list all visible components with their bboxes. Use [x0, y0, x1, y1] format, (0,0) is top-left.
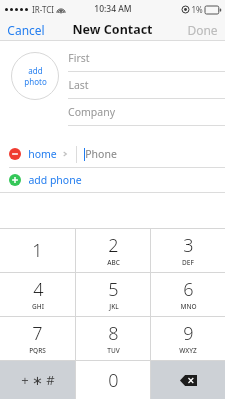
- staticText: ABC: [107, 258, 120, 267]
- staticText: 8: [108, 321, 119, 346]
- staticText: DEF: [182, 258, 194, 267]
- staticText: + ∗ #: [21, 371, 55, 389]
- staticText: 3: [183, 233, 194, 258]
- button[interactable]: 6: [151, 273, 225, 316]
- staticText: 9: [183, 321, 194, 346]
- staticText: 4: [33, 277, 44, 302]
- button[interactable]: Company: [0, 99, 225, 126]
- staticText: New Contact: [72, 21, 153, 38]
- button[interactable]: 4: [0, 273, 75, 316]
- staticText: Company: [68, 105, 115, 119]
- button[interactable]: 3: [151, 229, 225, 272]
- button[interactable]: 8: [76, 317, 150, 360]
- button[interactable]: Done: [180, 18, 225, 41]
- staticText: 5: [108, 277, 119, 302]
- button[interactable]: plus star hash: [0, 361, 75, 399]
- staticText: 7: [32, 321, 43, 346]
- button[interactable]: add photo: [11, 52, 59, 100]
- staticText: add: [28, 65, 43, 76]
- button[interactable]: 0: [76, 361, 150, 399]
- staticText: IR-TCI: [32, 4, 54, 15]
- staticText: home: [28, 147, 57, 161]
- staticText: JKL: [109, 302, 119, 311]
- button[interactable]: Delete: [151, 361, 225, 399]
- staticText: 2: [108, 233, 119, 258]
- staticText: MNO: [180, 302, 197, 311]
- button[interactable]: home: [0, 141, 225, 168]
- staticText: Cancel: [7, 22, 45, 38]
- staticText: First: [68, 51, 90, 65]
- button[interactable]: 7: [0, 317, 75, 360]
- button[interactable]: Last: [0, 72, 225, 99]
- button[interactable]: Cancel: [0, 18, 52, 41]
- staticText: TUV: [107, 346, 120, 355]
- staticText: 1: [32, 238, 43, 263]
- button[interactable]: 1: [0, 229, 75, 272]
- button[interactable]: 9: [151, 317, 225, 360]
- staticText: 6: [183, 277, 194, 302]
- staticText: Phone: [85, 147, 117, 161]
- staticText: 1%: [191, 4, 203, 15]
- staticText: GHI: [32, 302, 44, 311]
- staticText: 0: [108, 368, 119, 393]
- button[interactable]: add phone: [0, 168, 225, 192]
- staticText: Done: [187, 22, 218, 38]
- button[interactable]: 5: [76, 273, 150, 316]
- staticText: WXYZ: [179, 346, 197, 355]
- button[interactable]: 2: [76, 229, 150, 272]
- button[interactable]: First: [0, 45, 225, 72]
- staticText: photo: [24, 76, 47, 87]
- staticText: add phone: [28, 173, 82, 187]
- staticText: 10:34 AM: [94, 3, 132, 15]
- staticText: PQRS: [29, 346, 46, 355]
- staticText: Last: [68, 78, 89, 92]
